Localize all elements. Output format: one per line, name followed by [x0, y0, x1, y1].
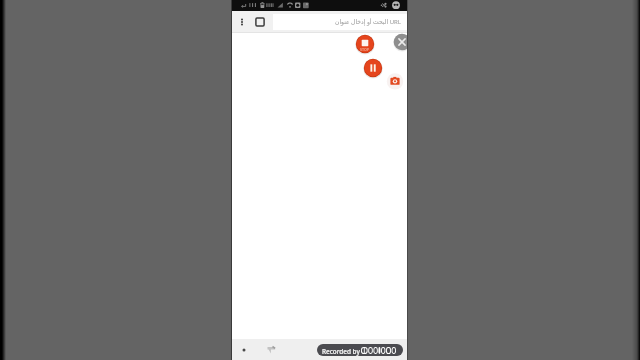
staticText: البحث أو إدخال عنوان URL [335, 18, 401, 26]
staticText: STOP [360, 47, 370, 52]
button[interactable]: البحث أو إدخال عنوان URL [273, 14, 407, 30]
button[interactable]: Pause recording [363, 58, 383, 78]
staticText: Recorded by [322, 347, 360, 356]
button[interactable]: Close recorder [392, 32, 407, 52]
button[interactable]: Back [263, 342, 277, 356]
button[interactable]: Stop recording [355, 34, 375, 54]
button[interactable]: Recent apps [237, 343, 251, 357]
button[interactable]: Tabs [252, 14, 268, 30]
button[interactable]: More options [234, 14, 250, 30]
button[interactable]: Capture screenshot [387, 73, 403, 89]
